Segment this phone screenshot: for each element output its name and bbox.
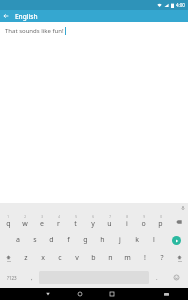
staticText: u	[107, 219, 112, 229]
staticText: a	[16, 235, 20, 245]
button[interactable]: v	[68, 249, 85, 267]
button[interactable]: 5	[67, 213, 84, 231]
button[interactable]: n	[102, 249, 119, 267]
staticText: That sounds like fun!	[5, 27, 64, 35]
staticText: 3	[41, 215, 43, 219]
button[interactable]: 7	[101, 213, 118, 231]
button[interactable]: Back	[32, 288, 64, 300]
staticText: w	[22, 219, 28, 229]
staticText: English	[15, 12, 38, 21]
button[interactable]: h	[94, 231, 111, 249]
staticText: 4:00	[176, 2, 185, 8]
staticText: ?	[160, 253, 164, 263]
button[interactable]: j	[111, 231, 128, 249]
staticText: c	[58, 253, 62, 263]
staticText: n	[108, 253, 113, 263]
staticText: j	[119, 235, 121, 245]
staticText: o	[141, 219, 146, 229]
button[interactable]: Hide keyboard	[150, 288, 182, 300]
button[interactable]: Home	[64, 288, 96, 300]
staticText: r	[57, 219, 60, 229]
staticText: h	[100, 235, 105, 245]
button[interactable]: 3	[33, 213, 50, 231]
staticText: 6	[92, 215, 94, 219]
button[interactable]: 0	[152, 213, 169, 231]
button[interactable]: k	[128, 231, 145, 249]
button[interactable]: m	[119, 249, 136, 267]
button[interactable]: !	[136, 249, 153, 267]
staticText: k	[135, 235, 139, 245]
staticText: !	[144, 253, 146, 263]
button[interactable]: s	[26, 231, 43, 249]
staticText: 7	[109, 215, 111, 219]
staticText: 1	[7, 215, 9, 219]
staticText: m	[124, 253, 131, 263]
button[interactable]: Backspace	[169, 213, 188, 231]
button[interactable]: g	[77, 231, 94, 249]
staticText: 5	[75, 215, 77, 219]
button[interactable]: ?123	[0, 267, 24, 288]
button[interactable]: 2	[16, 213, 33, 231]
button[interactable]: z	[17, 249, 34, 267]
button[interactable]: ?	[153, 249, 170, 267]
staticText: b	[91, 253, 96, 263]
button[interactable]: 1	[0, 213, 16, 231]
staticText: z	[24, 253, 28, 263]
staticText: d	[49, 235, 54, 245]
staticText: p	[158, 219, 163, 229]
staticText: q	[6, 219, 11, 229]
button[interactable]: ,	[24, 267, 39, 288]
button[interactable]: Emoji	[164, 267, 188, 288]
button[interactable]: Send	[164, 231, 188, 249]
staticText: 0	[160, 215, 162, 219]
button[interactable]: Back	[0, 10, 12, 22]
button[interactable]: Shift right	[170, 249, 188, 267]
staticText: e	[40, 219, 44, 229]
staticText: 9	[143, 215, 145, 219]
button[interactable]: b	[85, 249, 102, 267]
button[interactable]: 8	[118, 213, 135, 231]
staticText: 8	[126, 215, 128, 219]
staticText: y	[91, 219, 95, 229]
button[interactable]: 6	[84, 213, 101, 231]
button[interactable]: 4	[50, 213, 67, 231]
staticText: ?123	[7, 275, 17, 281]
staticText: x	[41, 253, 45, 263]
button[interactable]: d	[43, 231, 60, 249]
button[interactable]: Recents	[96, 288, 128, 300]
staticText: t	[74, 219, 77, 229]
staticText: s	[33, 235, 37, 245]
staticText: f	[67, 235, 70, 245]
button[interactable]: x	[34, 249, 51, 267]
button[interactable]: f	[60, 231, 77, 249]
staticText: l	[153, 235, 155, 245]
staticText: ,	[31, 274, 33, 282]
button[interactable]: l	[145, 231, 162, 249]
staticText: i	[126, 219, 128, 229]
button[interactable]: 9	[135, 213, 152, 231]
staticText: g	[83, 235, 88, 245]
staticText: .	[156, 274, 158, 282]
staticText: v	[75, 253, 79, 263]
staticText: 2	[24, 215, 26, 219]
button[interactable]: Shift	[0, 249, 17, 267]
button[interactable]: Voice input	[178, 203, 188, 213]
button[interactable]: a	[9, 231, 26, 249]
button[interactable]: c	[51, 249, 68, 267]
staticText: 4	[58, 215, 60, 219]
